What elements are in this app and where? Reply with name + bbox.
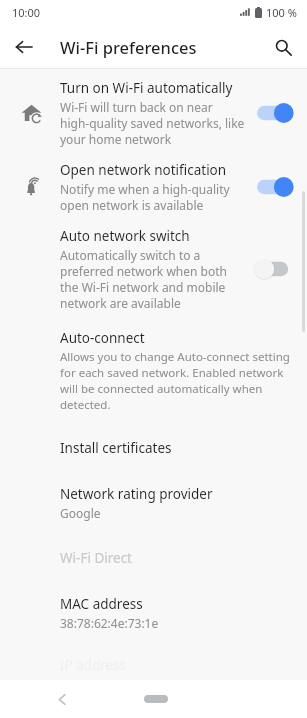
staticText: 100 % (266, 5, 297, 20)
button[interactable]: MAC address (0, 595, 307, 631)
staticText: 38:78:62:4e:73:1e (60, 615, 159, 631)
staticText: Wi-Fi will turn back on near (60, 99, 213, 115)
staticText: Allows you to change Auto-connect settin… (60, 349, 290, 365)
staticText: Wi-Fi preferences (60, 36, 197, 58)
staticText: detected. (60, 397, 111, 413)
staticText: for each saved network. Enabled network (60, 365, 284, 381)
staticText: Open network notification (60, 161, 227, 179)
button[interactable]: Network rating provider (0, 485, 307, 521)
button[interactable]: Auto network switch (0, 227, 307, 311)
staticText: 10:00 (12, 5, 41, 20)
staticText: open network is available (60, 197, 204, 213)
staticText: Auto-connect (60, 329, 145, 347)
button[interactable]: Wi-Fi Direct (0, 541, 307, 575)
staticText: your home network (60, 131, 172, 147)
button[interactable]: On (257, 174, 297, 200)
button[interactable]: Back (8, 31, 40, 63)
staticText: high-quality saved networks, like (60, 115, 245, 131)
button[interactable]: Turn on Wi-Fi automatically (0, 79, 307, 147)
staticText: Notify me when a high-quality (60, 181, 230, 197)
staticText: Google (60, 505, 101, 521)
staticText: Turn on Wi-Fi automatically (60, 79, 233, 97)
button[interactable]: On (257, 100, 297, 126)
staticText: Auto network switch (60, 227, 190, 245)
staticText: will be connected automatically when (60, 381, 263, 397)
staticText: Network rating provider (60, 485, 213, 503)
staticText: Automatically switch to a (60, 247, 201, 263)
button[interactable]: Auto-connect (0, 329, 307, 413)
staticText: preferred network when both (60, 263, 227, 279)
staticText: the Wi-Fi network and mobile (60, 279, 226, 295)
button[interactable]: Search (267, 31, 299, 63)
button[interactable]: Open network notification (0, 161, 307, 213)
button[interactable]: Home (144, 695, 168, 703)
button[interactable]: Back (48, 685, 76, 713)
staticText: network are available (60, 295, 181, 311)
staticText: Wi-Fi Direct (60, 549, 132, 567)
button[interactable]: Install certificates (0, 431, 307, 465)
staticText: Install certificates (60, 439, 172, 457)
staticText: MAC address (60, 595, 143, 613)
button[interactable]: Off (257, 256, 297, 282)
